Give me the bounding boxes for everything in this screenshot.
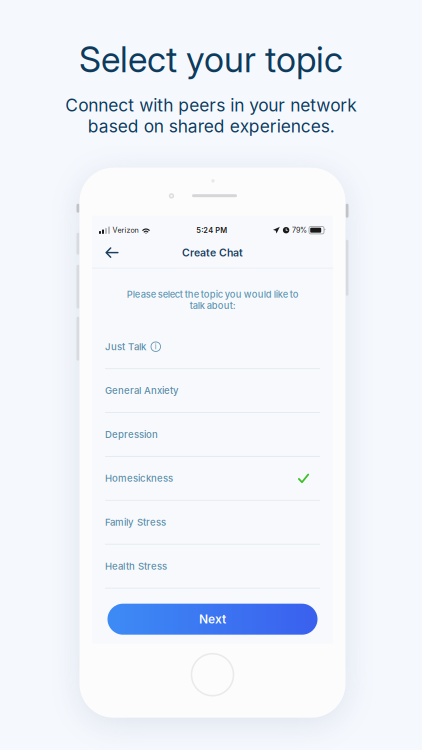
button[interactable]: General Anxiety — [92, 369, 333, 413]
staticText: General Anxiety — [105, 385, 179, 396]
button[interactable]: Health Stress — [92, 545, 333, 589]
staticText: 5:24 PM — [196, 226, 227, 235]
staticText: Connect with peers in your network based… — [65, 95, 357, 137]
button[interactable]: Homesickness — [92, 457, 333, 501]
staticText: Create Chat — [182, 246, 243, 259]
staticText: Depression — [105, 429, 158, 440]
staticText: Health Stress — [105, 560, 167, 572]
staticText: Select your topic — [79, 38, 343, 81]
button[interactable]: Back — [97, 240, 127, 266]
staticText: Homesickness — [105, 473, 173, 484]
button[interactable]: Just Talk — [92, 325, 333, 369]
button[interactable]: Next — [107, 604, 317, 635]
staticText: Next — [199, 612, 226, 626]
staticText: Just Talk — [105, 341, 146, 352]
staticText: 79% — [292, 226, 307, 234]
staticText: Please select the topic you would like t… — [126, 289, 298, 311]
button[interactable]: Family Stress — [92, 501, 333, 545]
staticText: Verizon — [112, 226, 138, 234]
button[interactable]: Depression — [92, 413, 333, 457]
staticText: Family Stress — [105, 516, 166, 528]
staticText: i — [155, 342, 157, 351]
